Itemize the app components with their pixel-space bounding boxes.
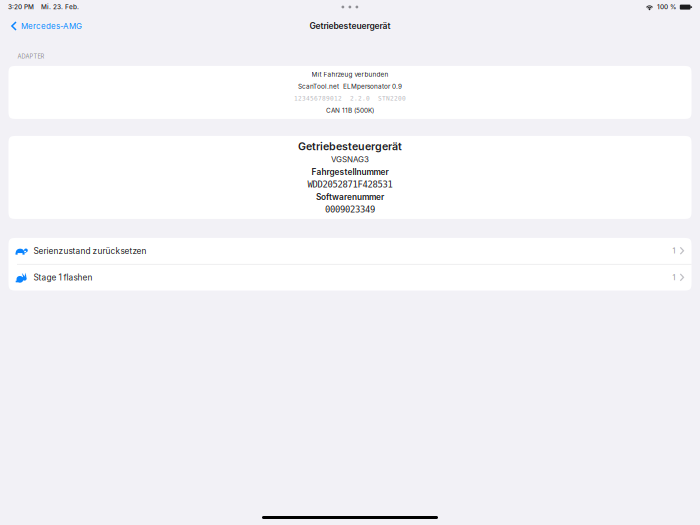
staticText: 100 % xyxy=(657,3,676,11)
button[interactable]: Stage 1 flashen xyxy=(8,264,691,290)
staticText: 1 xyxy=(672,247,675,255)
staticText: VGSNAG3 xyxy=(331,155,369,164)
staticText: 3:20 PM xyxy=(8,3,34,11)
staticText: Mit Fahrzeug verbunden xyxy=(311,71,388,78)
staticText: Serienzustand zurücksetzen xyxy=(33,246,146,256)
staticText: Stage 1 flashen xyxy=(33,272,92,282)
staticText: Getriebesteuergerät xyxy=(309,21,390,31)
staticText: Mercedes-AMG xyxy=(21,21,82,31)
button[interactable]: Serienzustand zurücksetzen xyxy=(8,238,691,264)
staticText: Mi. 23. Feb. xyxy=(41,3,79,11)
staticText: ADAPTER xyxy=(17,53,44,60)
staticText: ScanTool.net ELMpersonator 0.9 xyxy=(298,83,402,90)
staticText: WDD2052871F428531 xyxy=(307,179,392,189)
staticText: 1 xyxy=(672,273,675,282)
staticText: 123456789012 2.2.0 STN2200 xyxy=(294,95,406,102)
staticText: Fahrgestellnummer xyxy=(311,167,388,177)
staticText: Softwarenummer xyxy=(316,192,384,202)
staticText: CAN 11B (500K) xyxy=(326,107,374,114)
staticText: 0009023349 xyxy=(325,204,375,214)
button[interactable]: Mercedes-AMG xyxy=(0,16,90,36)
staticText: Getriebesteuergerät xyxy=(298,140,402,153)
